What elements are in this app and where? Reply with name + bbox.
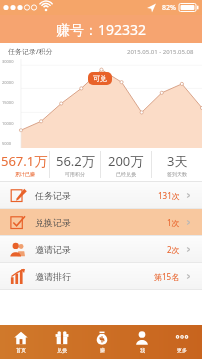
staticText: 56.2万 xyxy=(56,152,95,170)
other: Invite record xyxy=(10,242,25,257)
staticText: 5000 xyxy=(2,141,12,146)
button[interactable]: Earn xyxy=(82,325,122,359)
other: Home xyxy=(14,331,28,345)
button[interactable]: Invite record xyxy=(0,236,202,262)
staticText: 累计已赚 xyxy=(15,171,35,177)
staticText: 第15名 xyxy=(154,271,180,282)
button[interactable]: 可兑 xyxy=(88,72,112,85)
other: Exchange xyxy=(55,331,69,345)
staticText: 3天 xyxy=(167,152,188,170)
staticText: 200万 xyxy=(108,152,144,170)
staticText: 任务记录 xyxy=(35,190,71,201)
staticText: 1次 xyxy=(167,217,180,228)
other: Profile xyxy=(135,331,149,345)
staticText: 567.1万 xyxy=(1,152,48,170)
staticText: 任务记录/积分 xyxy=(8,47,53,57)
button[interactable]: Exchange record xyxy=(0,209,202,235)
staticText: 10000 xyxy=(2,121,14,126)
button[interactable]: 200万 xyxy=(101,148,151,181)
staticText: 15000 xyxy=(2,100,14,105)
button[interactable]: Profile xyxy=(122,325,162,359)
staticText: 兑换 xyxy=(57,347,67,353)
staticText: 2次 xyxy=(167,244,180,255)
button[interactable]: More xyxy=(162,325,202,359)
staticText: 2015.05.01 - 2015.05.08 xyxy=(127,48,194,56)
button[interactable]: Task record xyxy=(0,182,202,208)
staticText: 30000 xyxy=(2,59,14,64)
staticText: 可用积分 xyxy=(65,171,85,177)
staticText: 邀请排行 xyxy=(35,271,71,282)
staticText: 已经兑换 xyxy=(116,171,136,177)
other: Invite ranking xyxy=(10,269,25,284)
button[interactable]: 56.2万 xyxy=(50,148,100,181)
button[interactable]: Invite ranking xyxy=(0,263,202,289)
staticText: 赚 xyxy=(100,347,105,353)
other: Task record xyxy=(10,188,25,203)
other: Earn xyxy=(95,331,109,345)
staticText: 签到天数 xyxy=(167,171,187,177)
staticText: 赚号：192332 xyxy=(56,20,147,39)
staticText: 20000 xyxy=(2,80,14,85)
other: More xyxy=(175,331,189,345)
staticText: 首页 xyxy=(16,347,26,353)
staticText: 邀请记录 xyxy=(35,244,71,255)
button[interactable]: Exchange xyxy=(41,325,82,359)
other: Exchange record xyxy=(10,215,25,230)
staticText: 更多 xyxy=(177,347,187,353)
button[interactable]: 567.1万 xyxy=(0,148,49,181)
staticText: 兑换记录 xyxy=(35,217,71,228)
staticText: 可兑 xyxy=(93,74,107,83)
button[interactable]: Home xyxy=(0,325,41,359)
staticText: 我 xyxy=(140,347,145,353)
staticText: 82% xyxy=(162,3,176,13)
button[interactable]: 3天 xyxy=(152,148,202,181)
staticText: 131次 xyxy=(158,190,180,201)
